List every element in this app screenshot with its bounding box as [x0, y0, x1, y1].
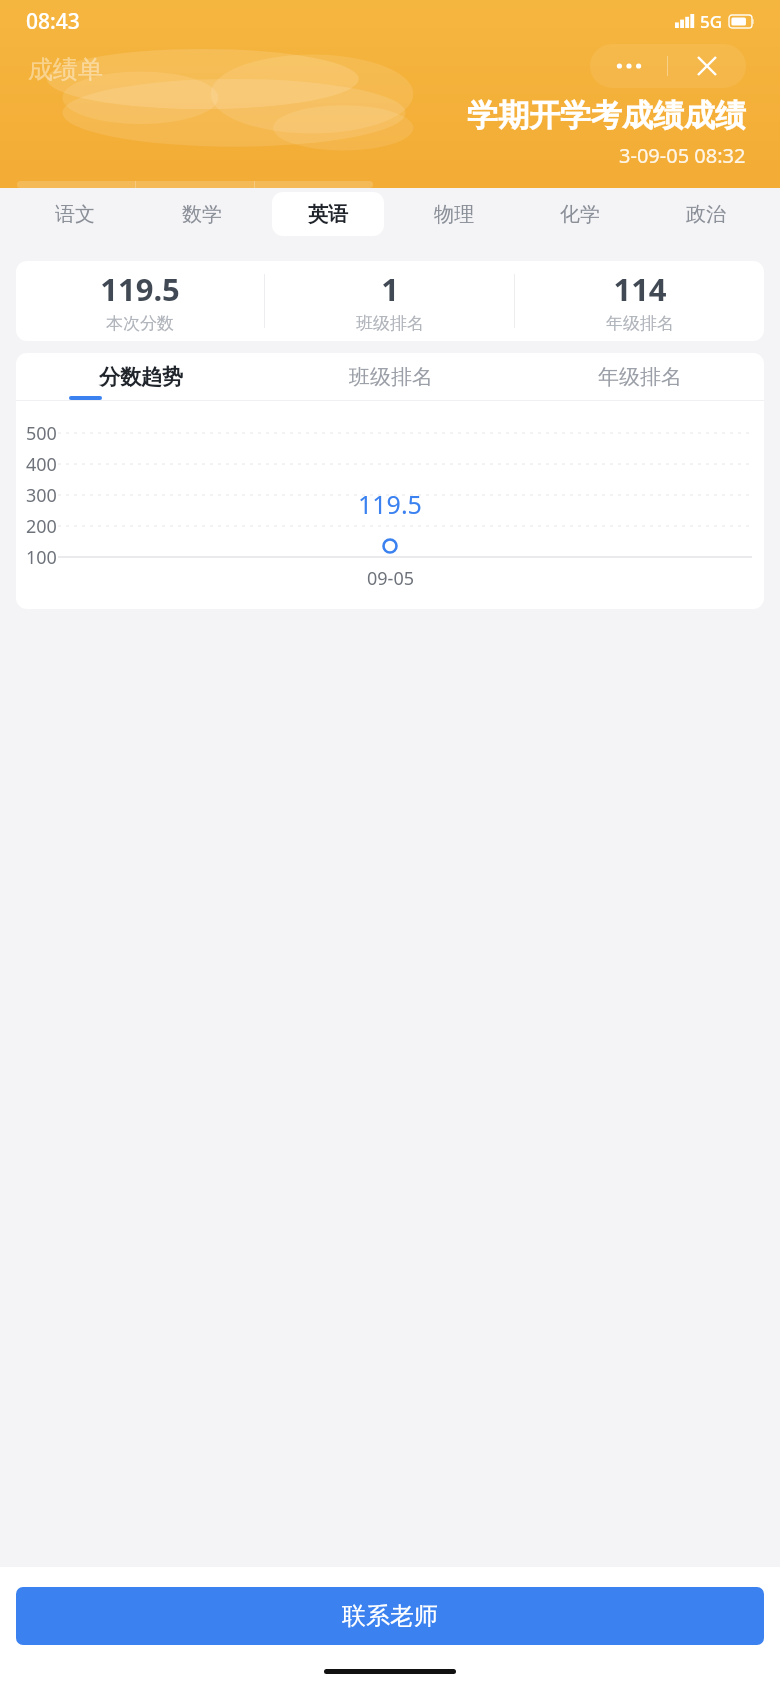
- staticText: 本次分数: [106, 313, 174, 334]
- staticText: 物理: [434, 202, 474, 227]
- button[interactable]: 英语: [272, 192, 384, 236]
- staticText: 班级排名: [349, 364, 433, 390]
- staticText: 1: [381, 268, 399, 310]
- staticText: 114: [613, 268, 667, 310]
- staticText: 年级排名: [606, 313, 674, 334]
- button[interactable]: Close: [668, 44, 746, 88]
- staticText: 100: [26, 545, 57, 569]
- staticText: 学期开学考成绩成绩: [467, 96, 746, 135]
- staticText: 5G: [700, 10, 723, 33]
- staticText: 语文: [55, 202, 95, 227]
- button[interactable]: 语文: [18, 192, 131, 236]
- staticText: 分数趋势: [99, 364, 183, 390]
- button[interactable]: 年级排名: [515, 353, 764, 400]
- staticText: 08:43: [26, 7, 80, 36]
- staticText: 300: [26, 483, 57, 507]
- button[interactable]: 化学: [524, 192, 636, 236]
- staticText: 119.5: [100, 268, 180, 310]
- staticText: 200: [26, 514, 57, 538]
- button[interactable]: 政治: [650, 192, 762, 236]
- button[interactable]: More options: [590, 44, 667, 88]
- staticText: 119.5: [358, 487, 422, 521]
- staticText: 成绩单: [28, 54, 103, 85]
- staticText: 数学: [182, 202, 222, 227]
- button[interactable]: 分数趋势: [16, 353, 266, 400]
- button[interactable]: 班级排名: [266, 353, 515, 400]
- button[interactable]: 联系老师: [16, 1587, 764, 1645]
- staticText: 3-09-05 08:32: [619, 142, 746, 169]
- staticText: 联系老师: [342, 1601, 438, 1631]
- staticText: 政治: [686, 202, 726, 227]
- staticText: 09-05: [367, 566, 414, 591]
- staticText: 英语: [308, 202, 348, 227]
- staticText: 班级排名: [356, 313, 424, 334]
- staticText: 年级排名: [598, 364, 682, 390]
- button[interactable]: 物理: [398, 192, 510, 236]
- staticText: 化学: [560, 202, 600, 227]
- staticText: 500: [26, 421, 57, 445]
- staticText: 400: [26, 452, 57, 476]
- button[interactable]: 数学: [145, 192, 258, 236]
